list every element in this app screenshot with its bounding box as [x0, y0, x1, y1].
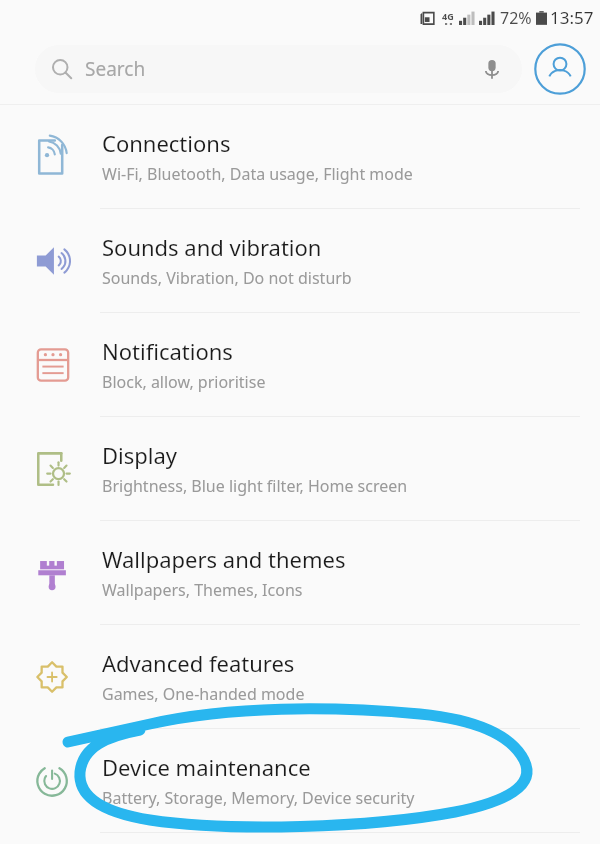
staticText: Display — [102, 440, 178, 470]
button[interactable]: Device maintenance — [0, 729, 600, 832]
staticText: Battery, Storage, Memory, Device securit… — [102, 787, 415, 809]
staticText: Sounds, Vibration, Do not disturb — [102, 267, 352, 289]
button[interactable]: Display — [0, 417, 600, 520]
button[interactable]: Account — [534, 43, 586, 95]
button[interactable]: Wallpapers and themes — [0, 521, 600, 624]
button[interactable]: Advanced features — [0, 625, 600, 728]
staticText: Block, allow, prioritise — [102, 371, 266, 393]
staticText: Wi-Fi, Bluetooth, Data usage, Flight mod… — [102, 163, 413, 185]
button[interactable]: Voice search — [478, 55, 506, 83]
staticText: Brightness, Blue light filter, Home scre… — [102, 475, 408, 497]
staticText: Device maintenance — [102, 752, 311, 782]
staticText: 13:57 — [550, 6, 594, 29]
button[interactable]: Search — [35, 45, 522, 93]
staticText: Connections — [102, 128, 231, 158]
staticText: Advanced features — [102, 648, 295, 678]
staticText: Notifications — [102, 336, 233, 366]
staticText: Search — [85, 56, 146, 82]
staticText: Sounds and vibration — [102, 232, 322, 262]
button[interactable]: Sounds and vibration — [0, 209, 600, 312]
staticText: 72% — [500, 7, 532, 29]
staticText: Wallpapers and themes — [102, 544, 346, 574]
staticText: 4G — [442, 10, 454, 22]
staticText: Games, One-handed mode — [102, 683, 305, 705]
button[interactable]: Connections — [0, 105, 600, 208]
staticText: Wallpapers, Themes, Icons — [102, 579, 303, 601]
button[interactable]: Notifications — [0, 313, 600, 416]
